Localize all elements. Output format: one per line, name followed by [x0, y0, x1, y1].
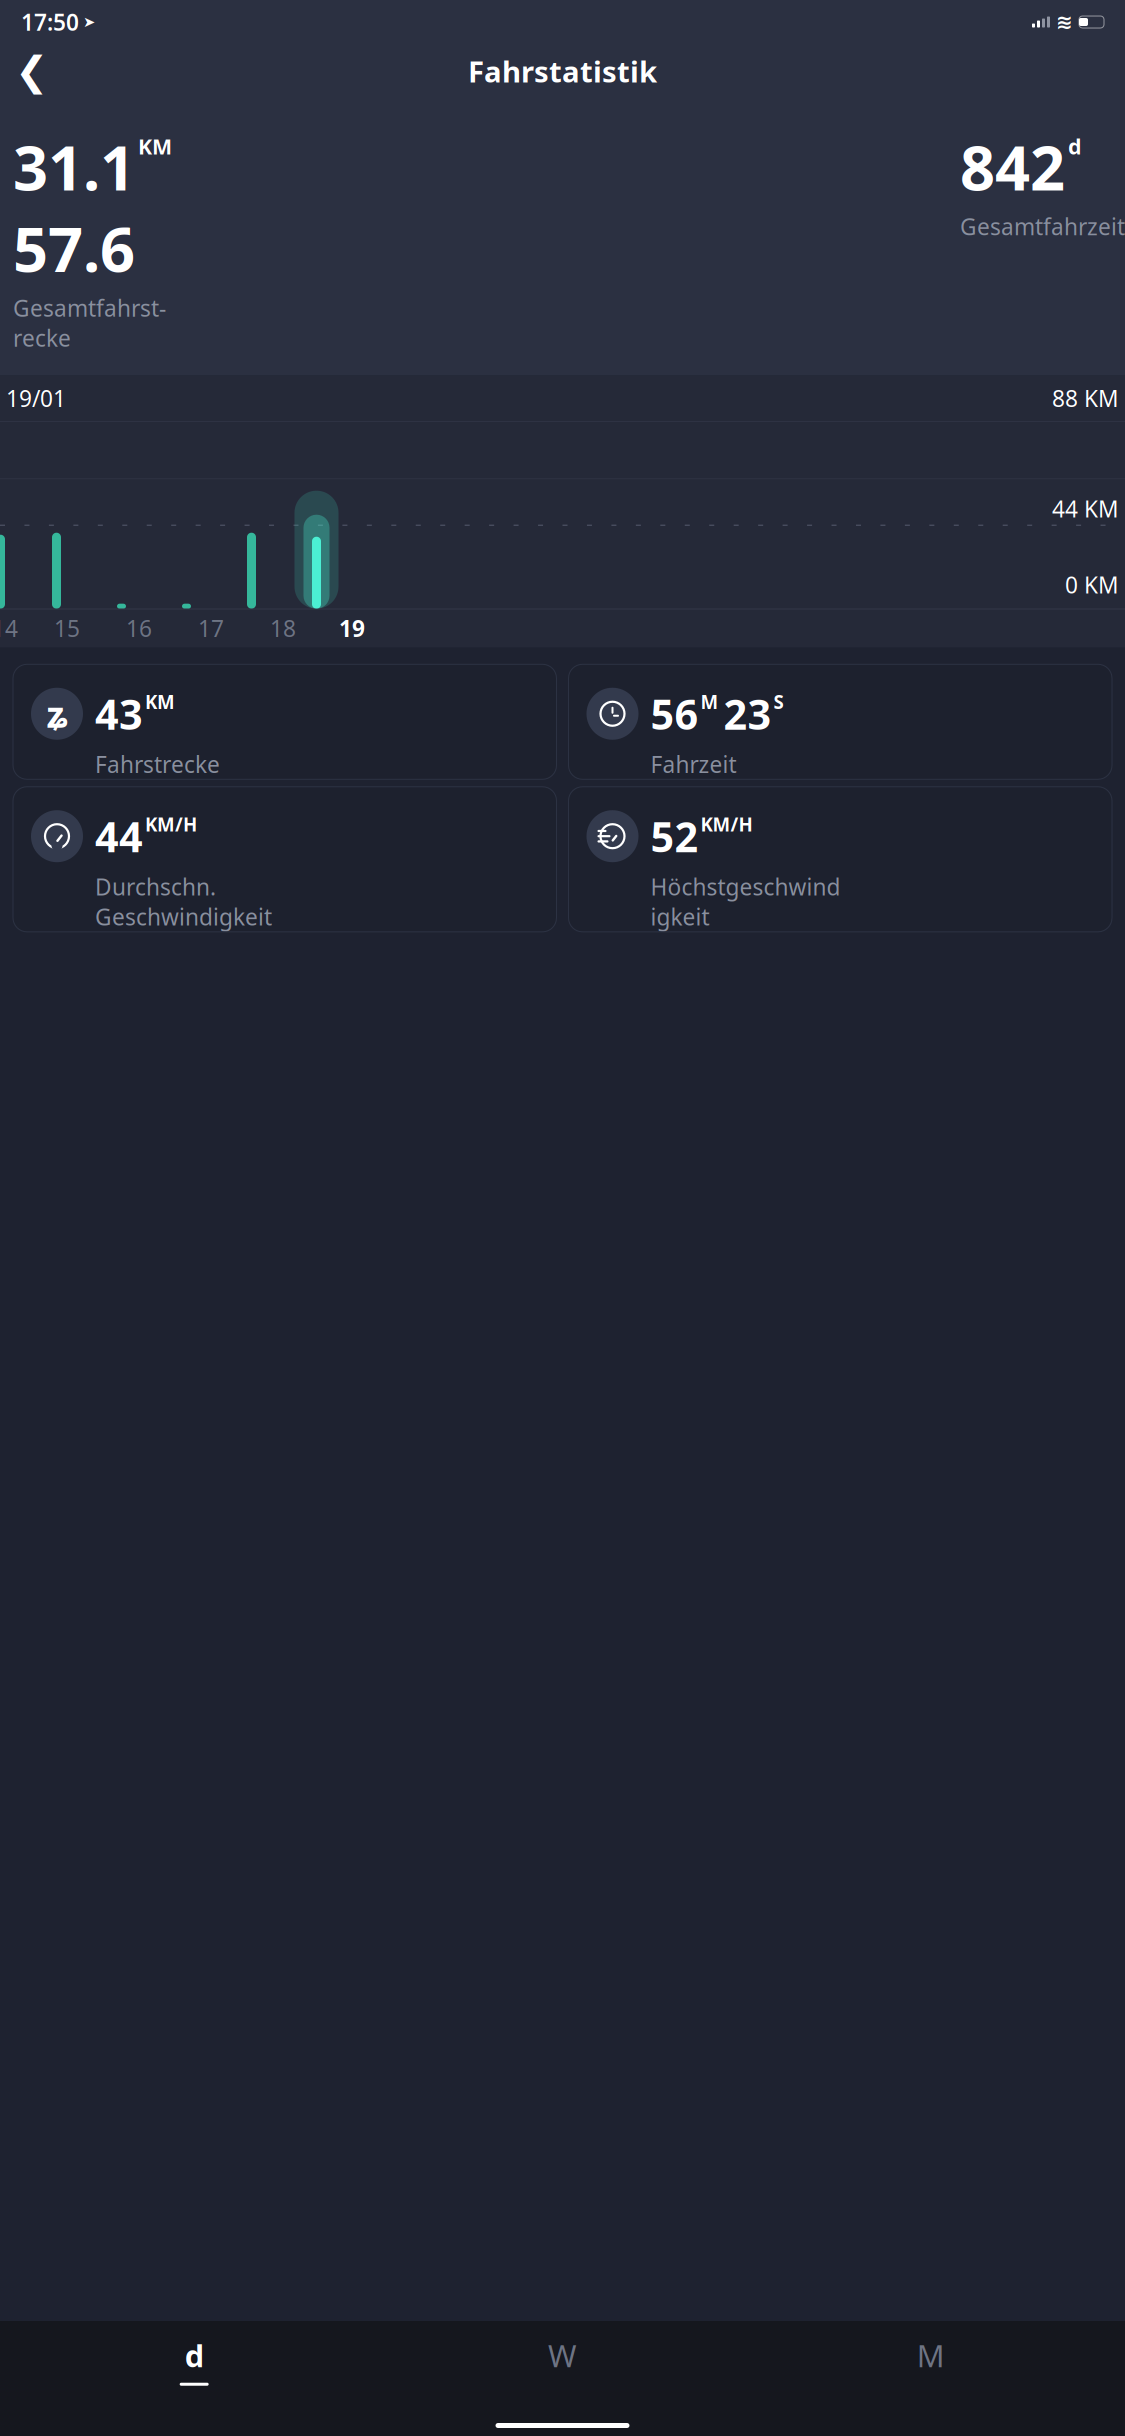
staticText: 56 [650, 686, 698, 741]
staticText: Gesamtfahrzeit [960, 211, 1125, 241]
staticText: KM/H [145, 812, 197, 837]
staticText: 17:50 [21, 7, 79, 37]
staticText: W [548, 2335, 577, 2376]
staticText: KM [145, 689, 175, 714]
staticText: ➤ [83, 14, 95, 30]
staticText: Höchstgeschwind igkeit [650, 872, 840, 932]
button[interactable]: W [378, 2321, 747, 2400]
staticText: 16 [126, 613, 152, 643]
button[interactable]: ʑ [13, 664, 556, 779]
staticText: Fahrzeit [650, 749, 736, 779]
button[interactable]: M [747, 2321, 1115, 2400]
staticText: 842 [960, 126, 1065, 207]
button[interactable]: 52 [568, 787, 1112, 932]
staticText: S [773, 689, 783, 714]
staticText: 17 [198, 613, 224, 643]
button[interactable]: d [10, 2321, 378, 2400]
button[interactable]: 56 [568, 664, 1112, 779]
staticText: 31.157.6 [13, 126, 135, 289]
staticText: Durchschn. Geschwindigkeit [95, 872, 272, 932]
staticText: d [1068, 132, 1081, 160]
staticText: 18 [270, 613, 296, 643]
button[interactable]: Back [10, 49, 54, 93]
button[interactable]: 44 [13, 787, 556, 932]
staticText: M [917, 2335, 945, 2376]
staticText: 23 [723, 686, 771, 741]
staticText: d [185, 2335, 204, 2376]
staticText: 14 [0, 613, 18, 643]
staticText: 44 [95, 809, 143, 864]
staticText: 15 [54, 613, 80, 643]
staticText: Fahrstrecke [95, 749, 220, 779]
staticText: Gesamtfahrstrecke [13, 293, 166, 353]
staticText: Fahrstatistik [468, 51, 657, 90]
staticText: KM/H [700, 812, 752, 837]
staticText: ʑ [46, 690, 67, 738]
staticText: 52 [650, 809, 698, 864]
staticText: 88 KM [1052, 383, 1119, 413]
staticText: ≋ [1056, 11, 1073, 33]
staticText: 0 KM [1065, 570, 1119, 600]
staticText: 43 [95, 686, 143, 741]
staticText: 19/01 [6, 383, 66, 413]
staticText: 44 KM [1052, 494, 1119, 524]
staticText: ❮ [15, 48, 49, 94]
staticText: KM [138, 132, 172, 160]
staticText: 19 [339, 613, 365, 643]
staticText: M [700, 689, 718, 714]
